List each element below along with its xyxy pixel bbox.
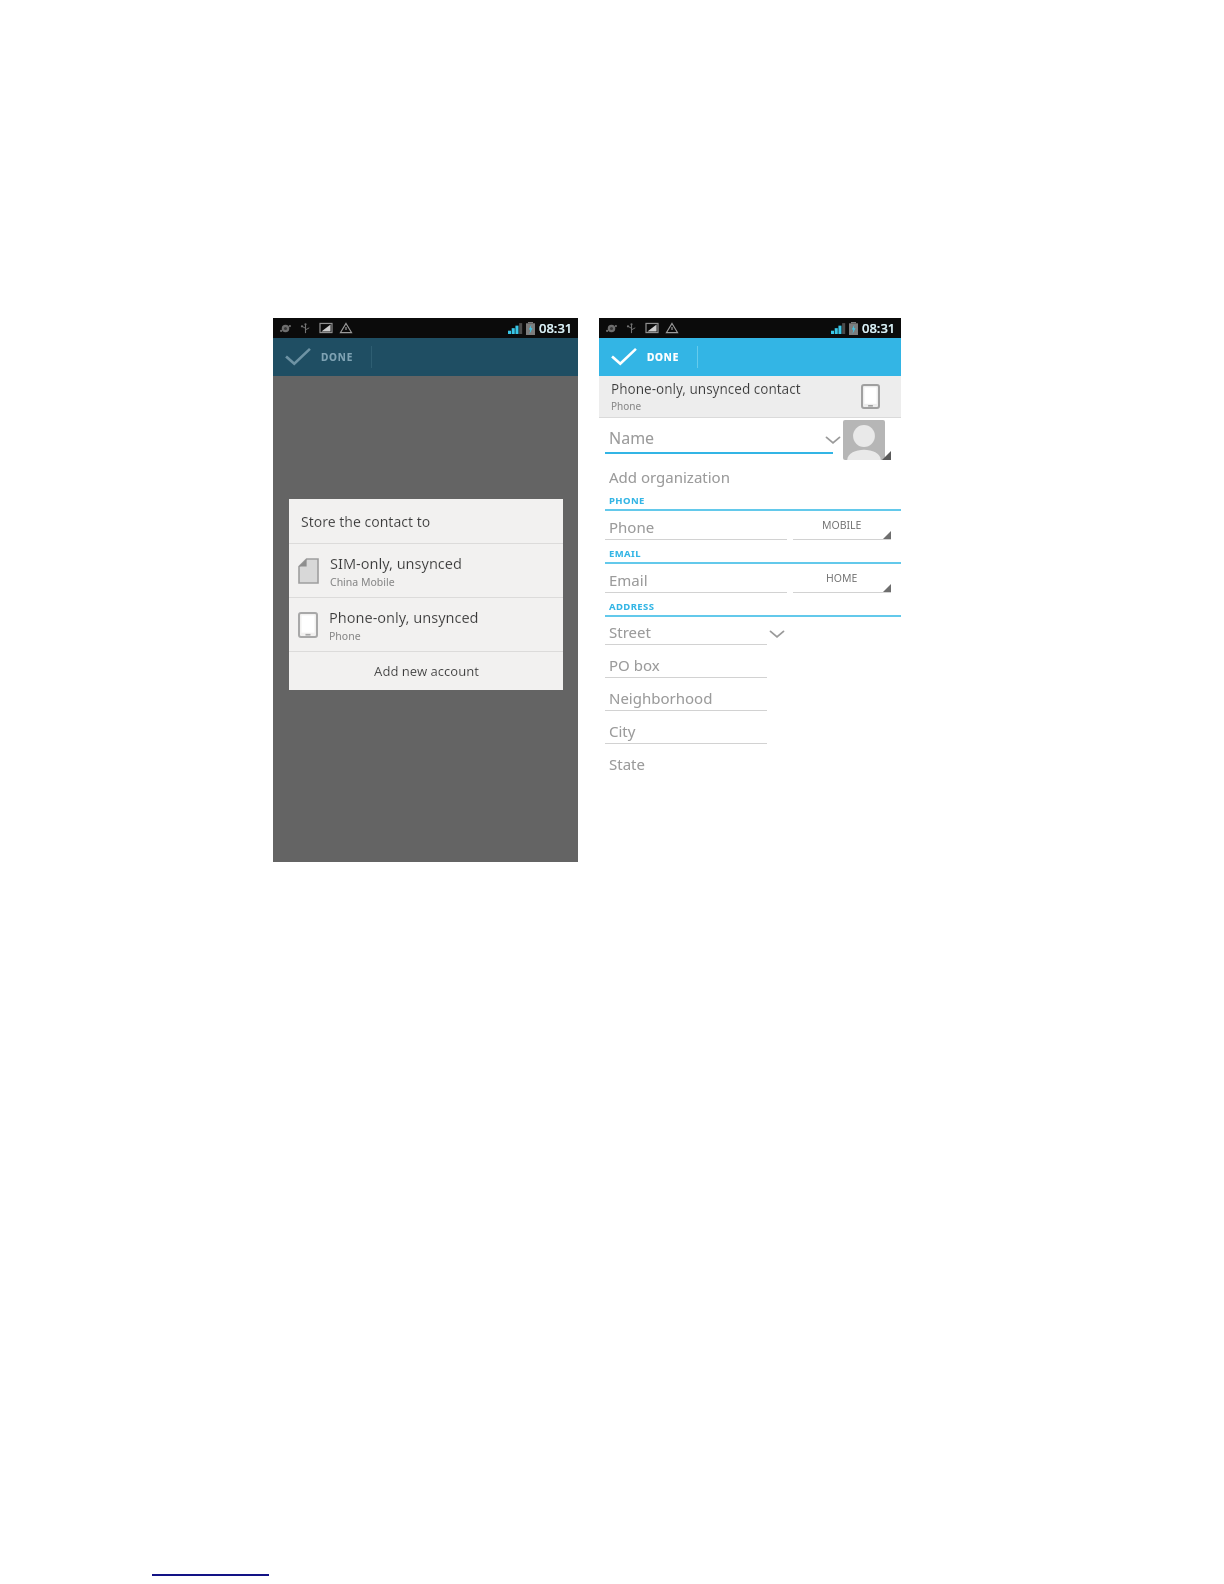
staticText: State: [609, 754, 645, 774]
button[interactable]: MOBILE: [793, 513, 891, 540]
button[interactable]: Expand address fields: [765, 622, 789, 646]
staticText: MOBILE: [822, 518, 862, 532]
staticText: PHONE: [609, 494, 645, 507]
staticText: Phone-only, unsynced contact: [611, 380, 801, 398]
staticText: ADDRESS: [609, 600, 655, 613]
staticText: Store the contact to: [301, 512, 431, 531]
button[interactable]: State: [605, 751, 767, 777]
button[interactable]: City: [605, 718, 767, 744]
staticText: Street: [609, 622, 651, 642]
staticText: City: [609, 721, 636, 741]
staticText: China Mobile: [330, 575, 395, 589]
button[interactable]: Expand name fields: [821, 428, 845, 452]
staticText: HOME: [826, 571, 858, 585]
button[interactable]: Email: [605, 566, 787, 593]
button[interactable]: PO box: [605, 652, 767, 678]
staticText: PO box: [609, 655, 660, 675]
staticText: SIM-only, unsynced: [330, 553, 462, 573]
staticText: Add new account: [374, 662, 479, 680]
button[interactable]: Neighborhood: [605, 685, 767, 711]
button[interactable]: Phone-only, unsynced: [289, 598, 563, 651]
button[interactable]: SIM-only, unsynced: [289, 544, 563, 597]
button[interactable]: Add organization: [599, 462, 901, 491]
staticText: DONE: [647, 350, 680, 364]
staticText: DONE: [321, 350, 354, 364]
staticText: Add organization: [609, 467, 730, 487]
staticText: Phone-only, unsynced: [329, 607, 479, 627]
button[interactable]: Phone-only, unsynced contact: [599, 376, 901, 417]
button[interactable]: Phone: [605, 513, 787, 540]
button[interactable]: DONE: [273, 338, 370, 376]
staticText: Phone: [329, 629, 361, 643]
staticText: EMAIL: [609, 547, 641, 560]
staticText: Phone: [609, 517, 655, 537]
staticText: 08:31: [862, 319, 896, 337]
button[interactable]: Add contact photo: [843, 420, 891, 460]
button[interactable]: Add new account: [289, 652, 563, 690]
staticText: Email: [609, 570, 648, 590]
button[interactable]: DONE: [599, 338, 696, 376]
button[interactable]: Street: [605, 619, 767, 645]
staticText: Name: [609, 427, 655, 449]
staticText: Phone: [611, 399, 642, 413]
button[interactable]: HOME: [793, 566, 891, 593]
staticText: Neighborhood: [609, 688, 713, 708]
button[interactable]: Name: [605, 422, 833, 454]
staticText: 08:31: [539, 319, 573, 337]
